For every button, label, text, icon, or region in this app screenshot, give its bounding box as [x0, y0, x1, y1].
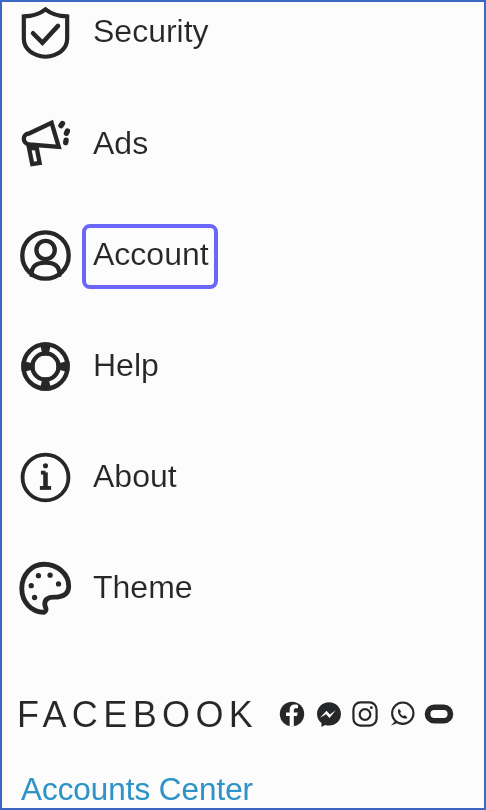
- button[interactable]: Facebook: [279, 701, 305, 727]
- staticText: Accounts Center: [21, 772, 254, 807]
- staticText: Help: [93, 347, 159, 383]
- button[interactable]: Theme: [0, 533, 486, 644]
- button[interactable]: Help: [0, 311, 486, 422]
- button[interactable]: Ads: [0, 89, 486, 200]
- staticText: About: [93, 458, 177, 494]
- staticText: FACEBOOK: [17, 694, 259, 734]
- staticText: Account: [93, 236, 209, 272]
- button[interactable]: Account: [0, 200, 486, 311]
- button[interactable]: Messenger: [316, 701, 342, 727]
- staticText: Security: [93, 13, 209, 49]
- button[interactable]: Accounts Center: [21, 772, 254, 807]
- staticText: Ads: [93, 125, 149, 161]
- button[interactable]: Instagram: [352, 701, 378, 727]
- button[interactable]: Security: [0, 0, 486, 88]
- button[interactable]: About: [0, 422, 486, 533]
- staticText: Theme: [93, 569, 193, 605]
- button[interactable]: WhatsApp: [389, 701, 415, 727]
- button[interactable]: Oculus: [426, 701, 452, 727]
